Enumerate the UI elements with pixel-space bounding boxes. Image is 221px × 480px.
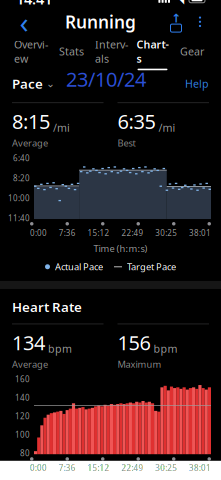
staticText: 140	[15, 392, 30, 403]
staticText: Pace	[12, 75, 43, 92]
staticText: ‹	[19, 2, 28, 41]
button[interactable]: Gear	[173, 38, 211, 63]
staticText: 14:41	[16, 0, 52, 8]
staticText: 7:36	[59, 227, 76, 238]
staticText: bpm	[48, 342, 72, 356]
staticText: 30:25	[155, 227, 177, 238]
staticText: Heart Rate	[12, 298, 82, 316]
staticText: 120	[15, 411, 30, 421]
staticText: ↑	[171, 11, 181, 25]
staticText: ◥	[175, 0, 184, 6]
staticText: 80	[20, 448, 30, 458]
staticText: Help	[185, 76, 209, 91]
staticText: Running	[65, 10, 136, 33]
staticText: 6:35	[117, 108, 155, 135]
button[interactable]: Stats	[52, 38, 90, 63]
button[interactable]: Help	[185, 72, 209, 95]
staticText: 8:15	[12, 108, 50, 135]
staticText: Average	[12, 358, 48, 370]
staticText: 10:00	[8, 193, 30, 203]
staticText: 30:25	[155, 463, 177, 473]
staticText: Best	[117, 137, 135, 149]
button[interactable]: More options	[189, 8, 211, 36]
staticText: 15:12	[88, 463, 110, 473]
button[interactable]: Back	[10, 8, 38, 36]
button[interactable]: Charts	[132, 31, 172, 70]
staticText: 160	[15, 374, 30, 384]
staticText: Stats	[59, 44, 84, 59]
staticText: bpm	[153, 342, 177, 356]
staticText: 100	[15, 429, 30, 440]
staticText: Overview	[14, 37, 48, 66]
staticText: 22:49	[121, 227, 143, 238]
staticText: Charts	[136, 37, 168, 66]
button[interactable]: Share	[163, 8, 189, 36]
staticText: 0:00	[30, 463, 47, 473]
staticText: ⌄	[46, 78, 55, 90]
staticText: 0:00	[30, 227, 47, 238]
staticText: 15:12	[88, 227, 110, 238]
staticText: 8:20	[13, 173, 30, 183]
button[interactable]: Intervals	[91, 31, 132, 70]
staticText: 156	[117, 329, 150, 356]
staticText: 134	[12, 329, 45, 356]
staticText: /mi	[53, 120, 70, 135]
staticText: 23/10/24	[66, 66, 146, 92]
staticText: Target Pace	[127, 261, 176, 273]
staticText: 11:40	[8, 213, 30, 223]
staticText: Gear	[180, 44, 204, 59]
staticText: Actual Pace	[55, 261, 103, 273]
staticText: 38:01	[189, 463, 211, 473]
staticText: Average	[12, 137, 48, 149]
staticText: 38:01	[189, 227, 211, 238]
staticText: 22:49	[121, 463, 143, 473]
staticText: 7:36	[59, 463, 76, 473]
staticText: Maximum	[117, 358, 161, 370]
staticText: /mi	[158, 120, 175, 135]
staticText: Time (h:m:s)	[93, 242, 147, 255]
button[interactable]: Overview	[10, 31, 52, 70]
staticText: Intervals	[95, 37, 128, 66]
button[interactable]: Pace	[12, 71, 55, 96]
staticText: 6:40	[13, 153, 30, 163]
